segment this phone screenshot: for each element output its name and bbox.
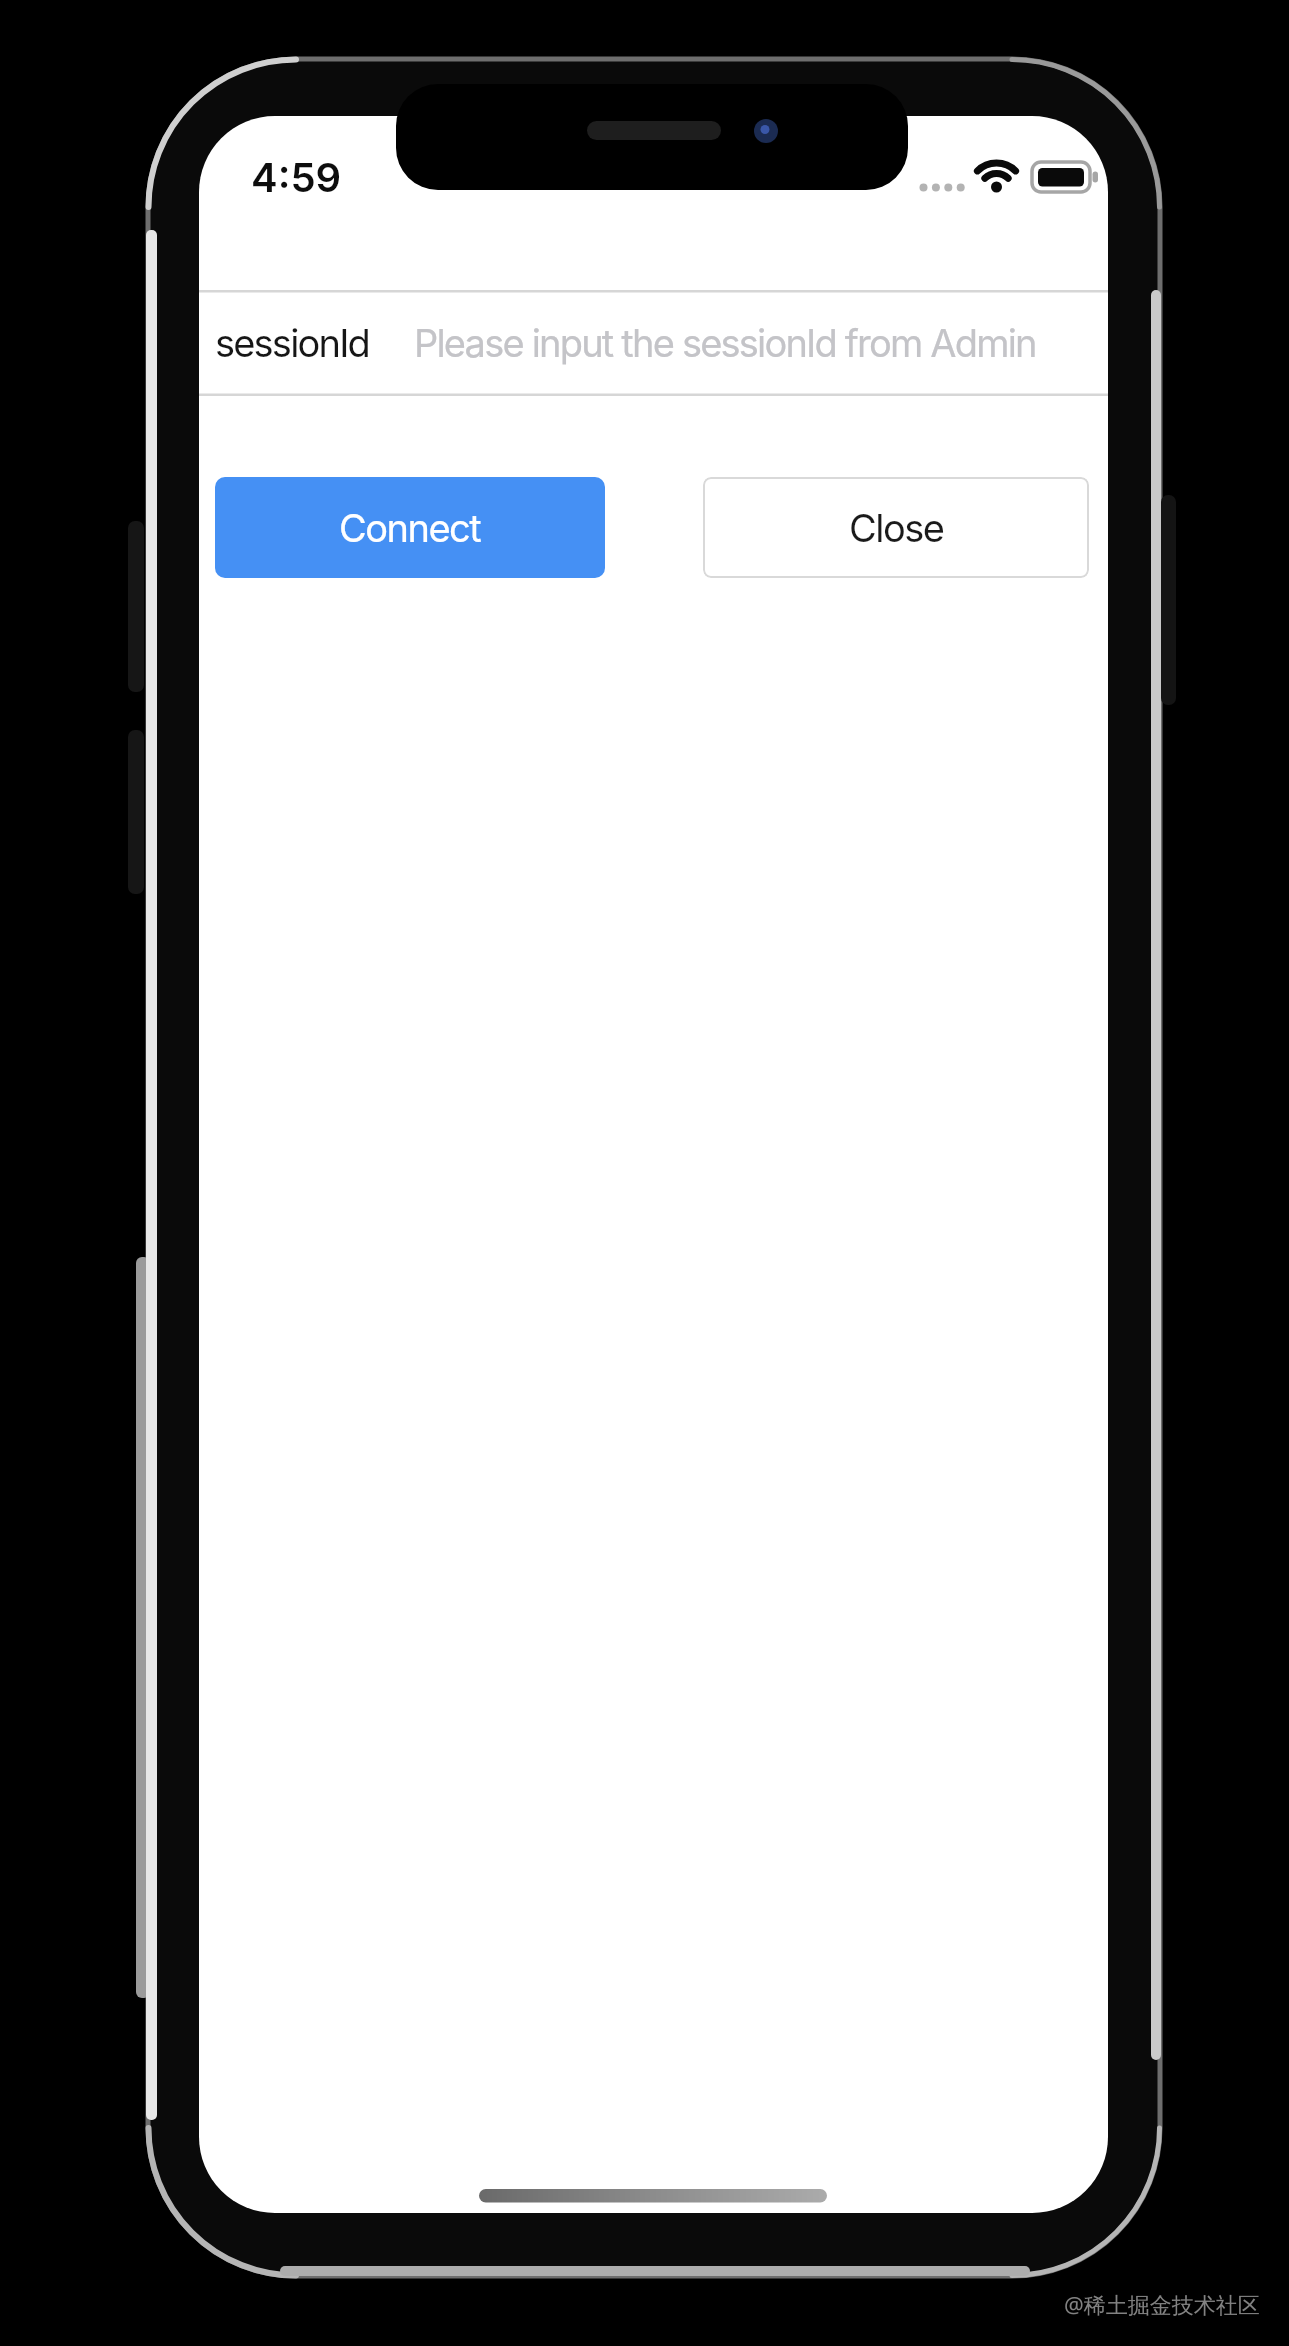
staticText: sessionId [215,320,370,366]
button[interactable]: Close [703,477,1089,578]
staticText: Please input the sessionId from Admin [414,320,1036,366]
staticText: 4:59 [251,153,342,201]
button[interactable]: sessionId [199,293,1108,393]
staticText: Connect [339,505,481,551]
staticText: @稀土掘金技术社区 [1064,2289,1260,2319]
button[interactable]: Connect [215,477,605,578]
staticText: Close [849,505,944,551]
